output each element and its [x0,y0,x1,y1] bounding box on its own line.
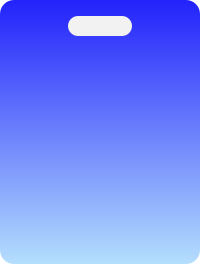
button[interactable]: Home indicator [68,16,132,36]
